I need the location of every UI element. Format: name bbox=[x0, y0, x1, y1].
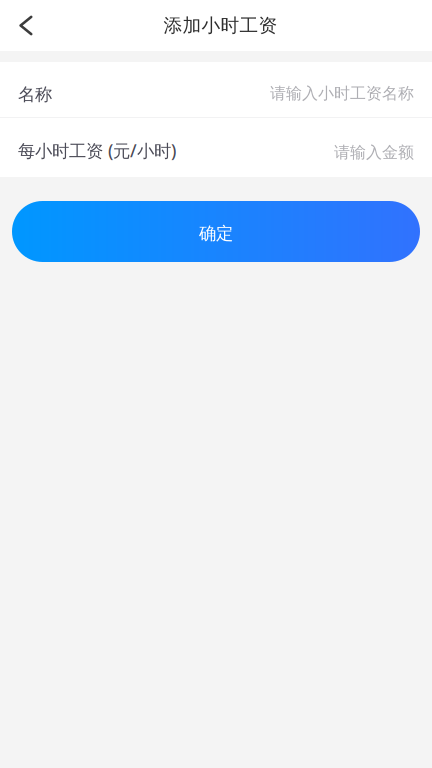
staticText: 添加小时工资 bbox=[163, 14, 277, 37]
staticText: 名称 bbox=[18, 84, 52, 105]
staticText: 每小时工资 (元/小时) bbox=[18, 139, 176, 162]
staticText: 确定 bbox=[199, 223, 233, 244]
button[interactable]: 确定 bbox=[0, 201, 432, 262]
button[interactable]: Back bbox=[0, 0, 46, 51]
staticText: 请输入小时工资名称 bbox=[270, 84, 414, 103]
button[interactable]: 每小时工资 (元/小时) bbox=[0, 118, 432, 177]
button[interactable]: 名称 bbox=[0, 62, 432, 117]
staticText: 请输入金额 bbox=[334, 143, 414, 162]
